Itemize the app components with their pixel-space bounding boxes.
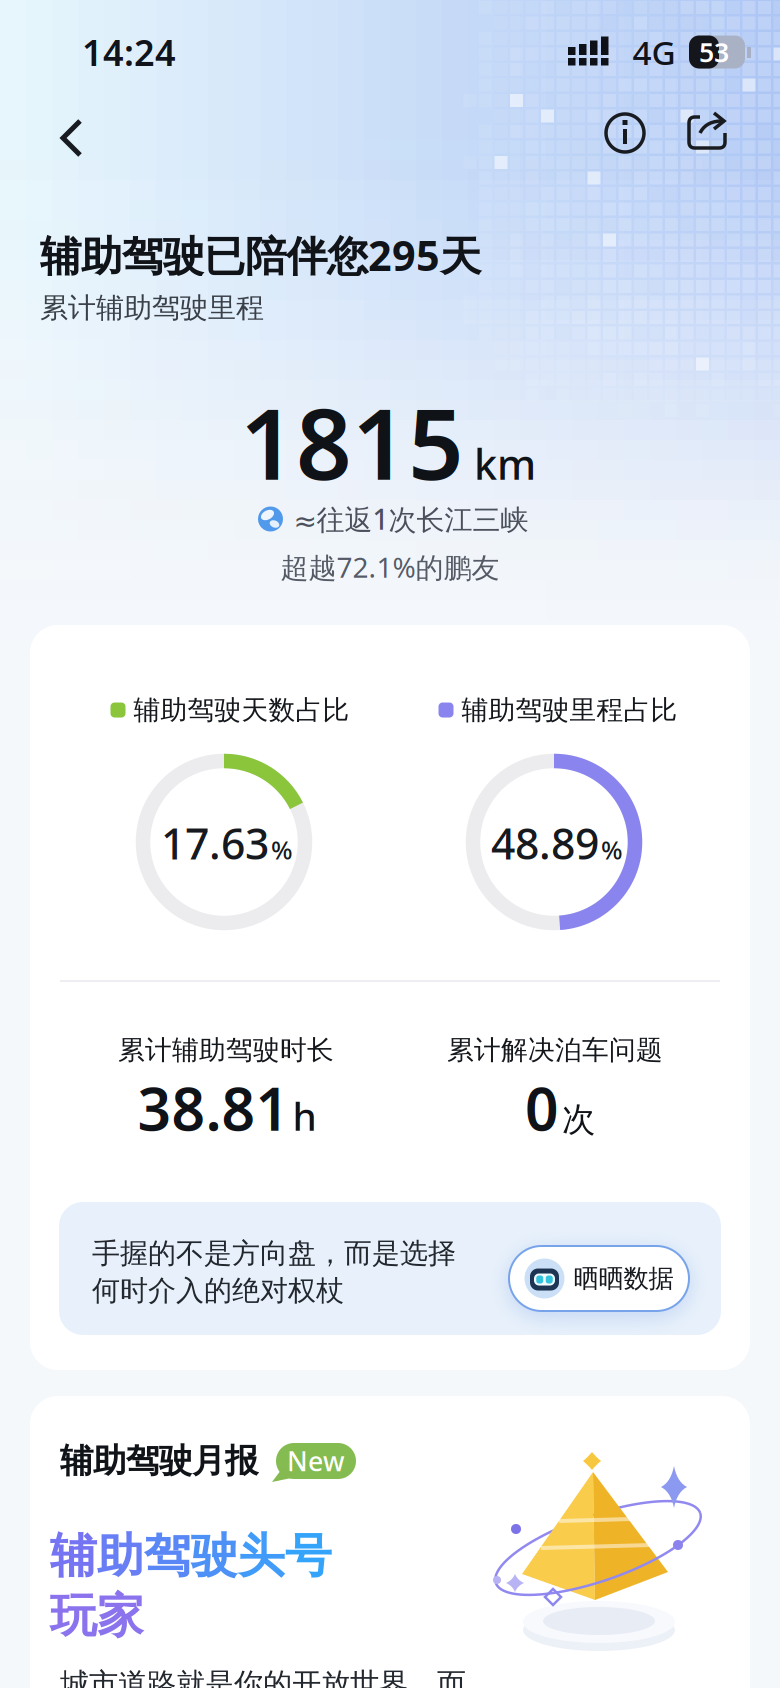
- button[interactable]: 晒晒数据: [509, 1246, 689, 1311]
- button[interactable]: Back: [41, 108, 101, 168]
- staticText: 辅助驾驶月报: [60, 1440, 258, 1481]
- staticText: 超越72.1%的鹏友: [280, 548, 499, 586]
- staticText: km: [474, 436, 536, 491]
- button[interactable]: Info: [595, 103, 655, 163]
- staticText: 手握的不是方向盘，而是选择: [92, 1236, 456, 1270]
- staticText: 辅: [50, 1527, 97, 1585]
- staticText: 城市道路就是你的开放世界，而: [60, 1666, 466, 1688]
- staticText: 14:24: [82, 28, 176, 76]
- staticText: 38.81: [137, 1069, 289, 1147]
- staticText: New: [287, 1443, 345, 1479]
- staticText: 17.63: [161, 815, 269, 871]
- staticText: 53: [699, 34, 729, 70]
- staticText: 号: [285, 1527, 332, 1585]
- staticText: 4G: [632, 30, 675, 74]
- staticText: 累计解决泊车问题: [447, 1034, 663, 1066]
- staticText: 玩家: [50, 1587, 144, 1645]
- staticText: %: [601, 833, 623, 866]
- staticText: 48.89: [491, 815, 599, 871]
- staticText: ≈往返1次长江三峡: [293, 500, 528, 538]
- staticText: %: [271, 833, 293, 866]
- staticText: 助: [97, 1527, 144, 1585]
- staticText: 0: [525, 1069, 559, 1147]
- staticText: 辅助驾驶里程占比: [461, 694, 677, 726]
- staticText: 驾: [144, 1527, 191, 1585]
- staticText: 驶: [191, 1527, 238, 1585]
- staticText: 头: [238, 1527, 285, 1585]
- staticText: 何时介入的绝对权杖: [92, 1273, 344, 1308]
- staticText: 累计辅助驾驶里程: [40, 291, 264, 325]
- staticText: 1815: [240, 377, 464, 507]
- staticText: 辅助驾驶天数占比: [133, 694, 349, 726]
- staticText: h: [292, 1090, 316, 1141]
- staticText: 晒晒数据: [573, 1263, 673, 1294]
- staticText: 辅助驾驶已陪伴您295天: [40, 228, 481, 282]
- staticText: 累计辅助驾驶时长: [118, 1034, 334, 1066]
- staticText: 次: [562, 1099, 595, 1140]
- button[interactable]: Share: [677, 102, 737, 162]
- button[interactable]: 辅助驾驶月报: [30, 1396, 750, 1688]
